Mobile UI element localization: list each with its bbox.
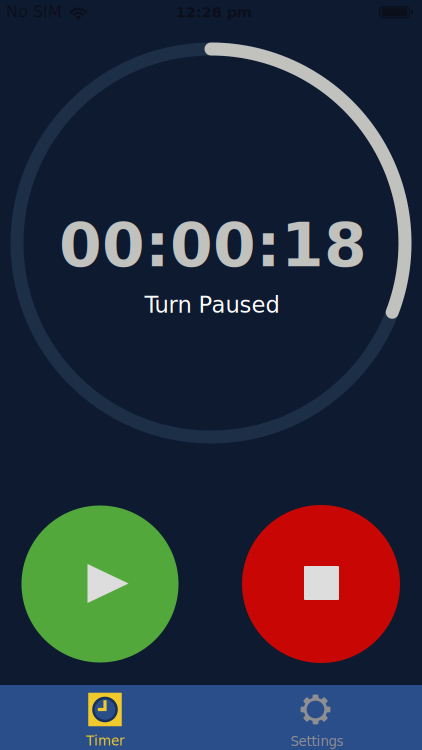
staticText: Settings xyxy=(290,734,343,749)
button[interactable]: Settings xyxy=(211,685,422,750)
button[interactable]: Timer xyxy=(0,685,211,750)
staticText: 12:28 pm xyxy=(176,4,252,21)
staticText: Turn Paused xyxy=(144,292,279,318)
staticText: 00:00:18 xyxy=(59,209,367,281)
staticText: No SIM xyxy=(6,2,62,21)
staticText: Timer xyxy=(86,733,124,749)
button[interactable]: Stop xyxy=(242,505,400,663)
button[interactable]: Start xyxy=(21,505,178,662)
